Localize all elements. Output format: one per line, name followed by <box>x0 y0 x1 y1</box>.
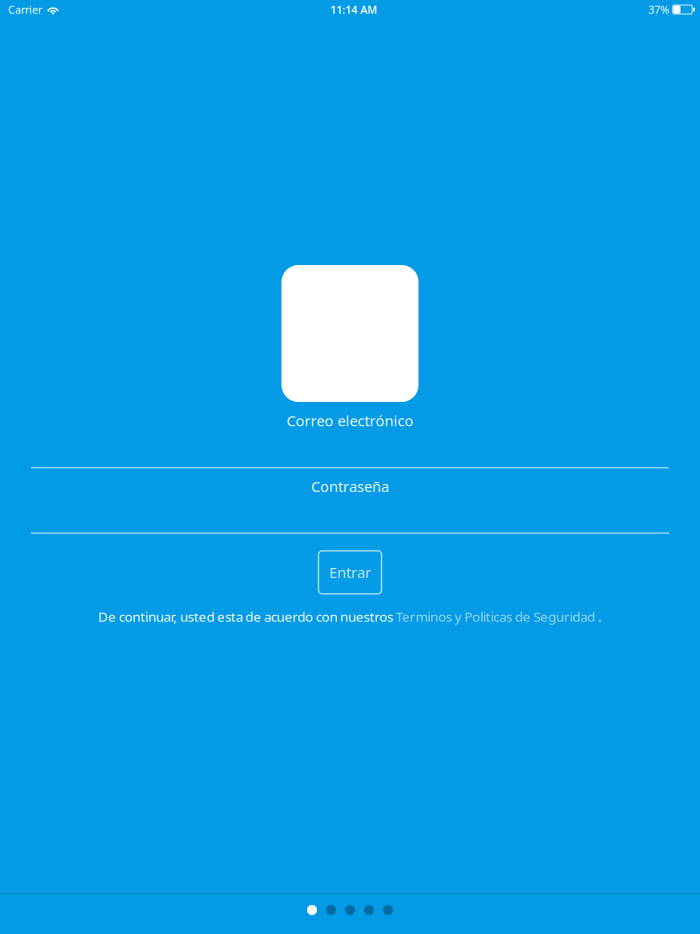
button[interactable]: Correo electrónico <box>31 402 669 468</box>
staticText: Correo electrónico <box>286 411 413 430</box>
staticText: Contraseña <box>311 477 389 496</box>
staticText: 37% <box>648 2 669 17</box>
staticText: Carrier <box>8 2 42 17</box>
button[interactable]: Page 1 of 5 <box>0 894 700 934</box>
button[interactable]: Terminos y Politicas de Seguridad <box>396 608 595 625</box>
button[interactable]: Contraseña <box>31 468 669 534</box>
staticText: Entrar <box>329 563 371 582</box>
staticText: De continuar, usted esta de acuerdo con … <box>98 608 396 625</box>
button[interactable]: Entrar <box>318 551 381 594</box>
staticText: Terminos y Politicas de Seguridad <box>396 608 595 625</box>
staticText: . <box>595 608 602 625</box>
staticText: 11:14 AM <box>330 2 377 17</box>
